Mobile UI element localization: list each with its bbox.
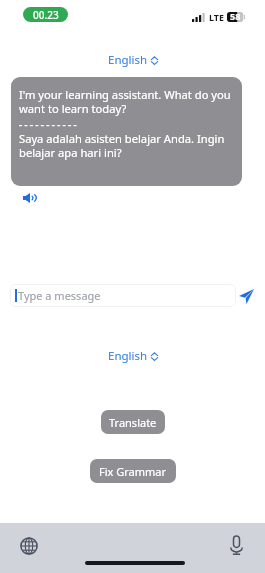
button[interactable]: Fix Grammar: [90, 459, 176, 483]
staticText: English: [108, 52, 148, 68]
button[interactable]: Type a message: [10, 284, 236, 307]
button[interactable]: I'm your learning assistant. What do you…: [11, 77, 242, 186]
button[interactable]: 00.23: [23, 7, 68, 22]
button[interactable]: Play audio: [18, 186, 41, 209]
staticText: Translate: [109, 415, 157, 430]
button[interactable]: Send: [238, 288, 255, 305]
button[interactable]: English: [104, 50, 162, 70]
staticText: LTE: [209, 11, 225, 23]
staticText: I'm your learning assistant. What do you…: [19, 87, 239, 117]
staticText: Saya adalah asisten belajar Anda. Ingin …: [19, 131, 239, 161]
staticText: Type a message: [18, 288, 101, 303]
button[interactable]: Change keyboard language: [17, 534, 41, 558]
button[interactable]: Translate: [101, 410, 165, 434]
button[interactable]: Voice input: [224, 533, 248, 557]
button[interactable]: English: [104, 346, 162, 366]
staticText: 58: [230, 10, 241, 20]
staticText: Fix Grammar: [99, 464, 167, 479]
staticText: 00.23: [33, 8, 59, 22]
staticText: English: [108, 348, 148, 364]
